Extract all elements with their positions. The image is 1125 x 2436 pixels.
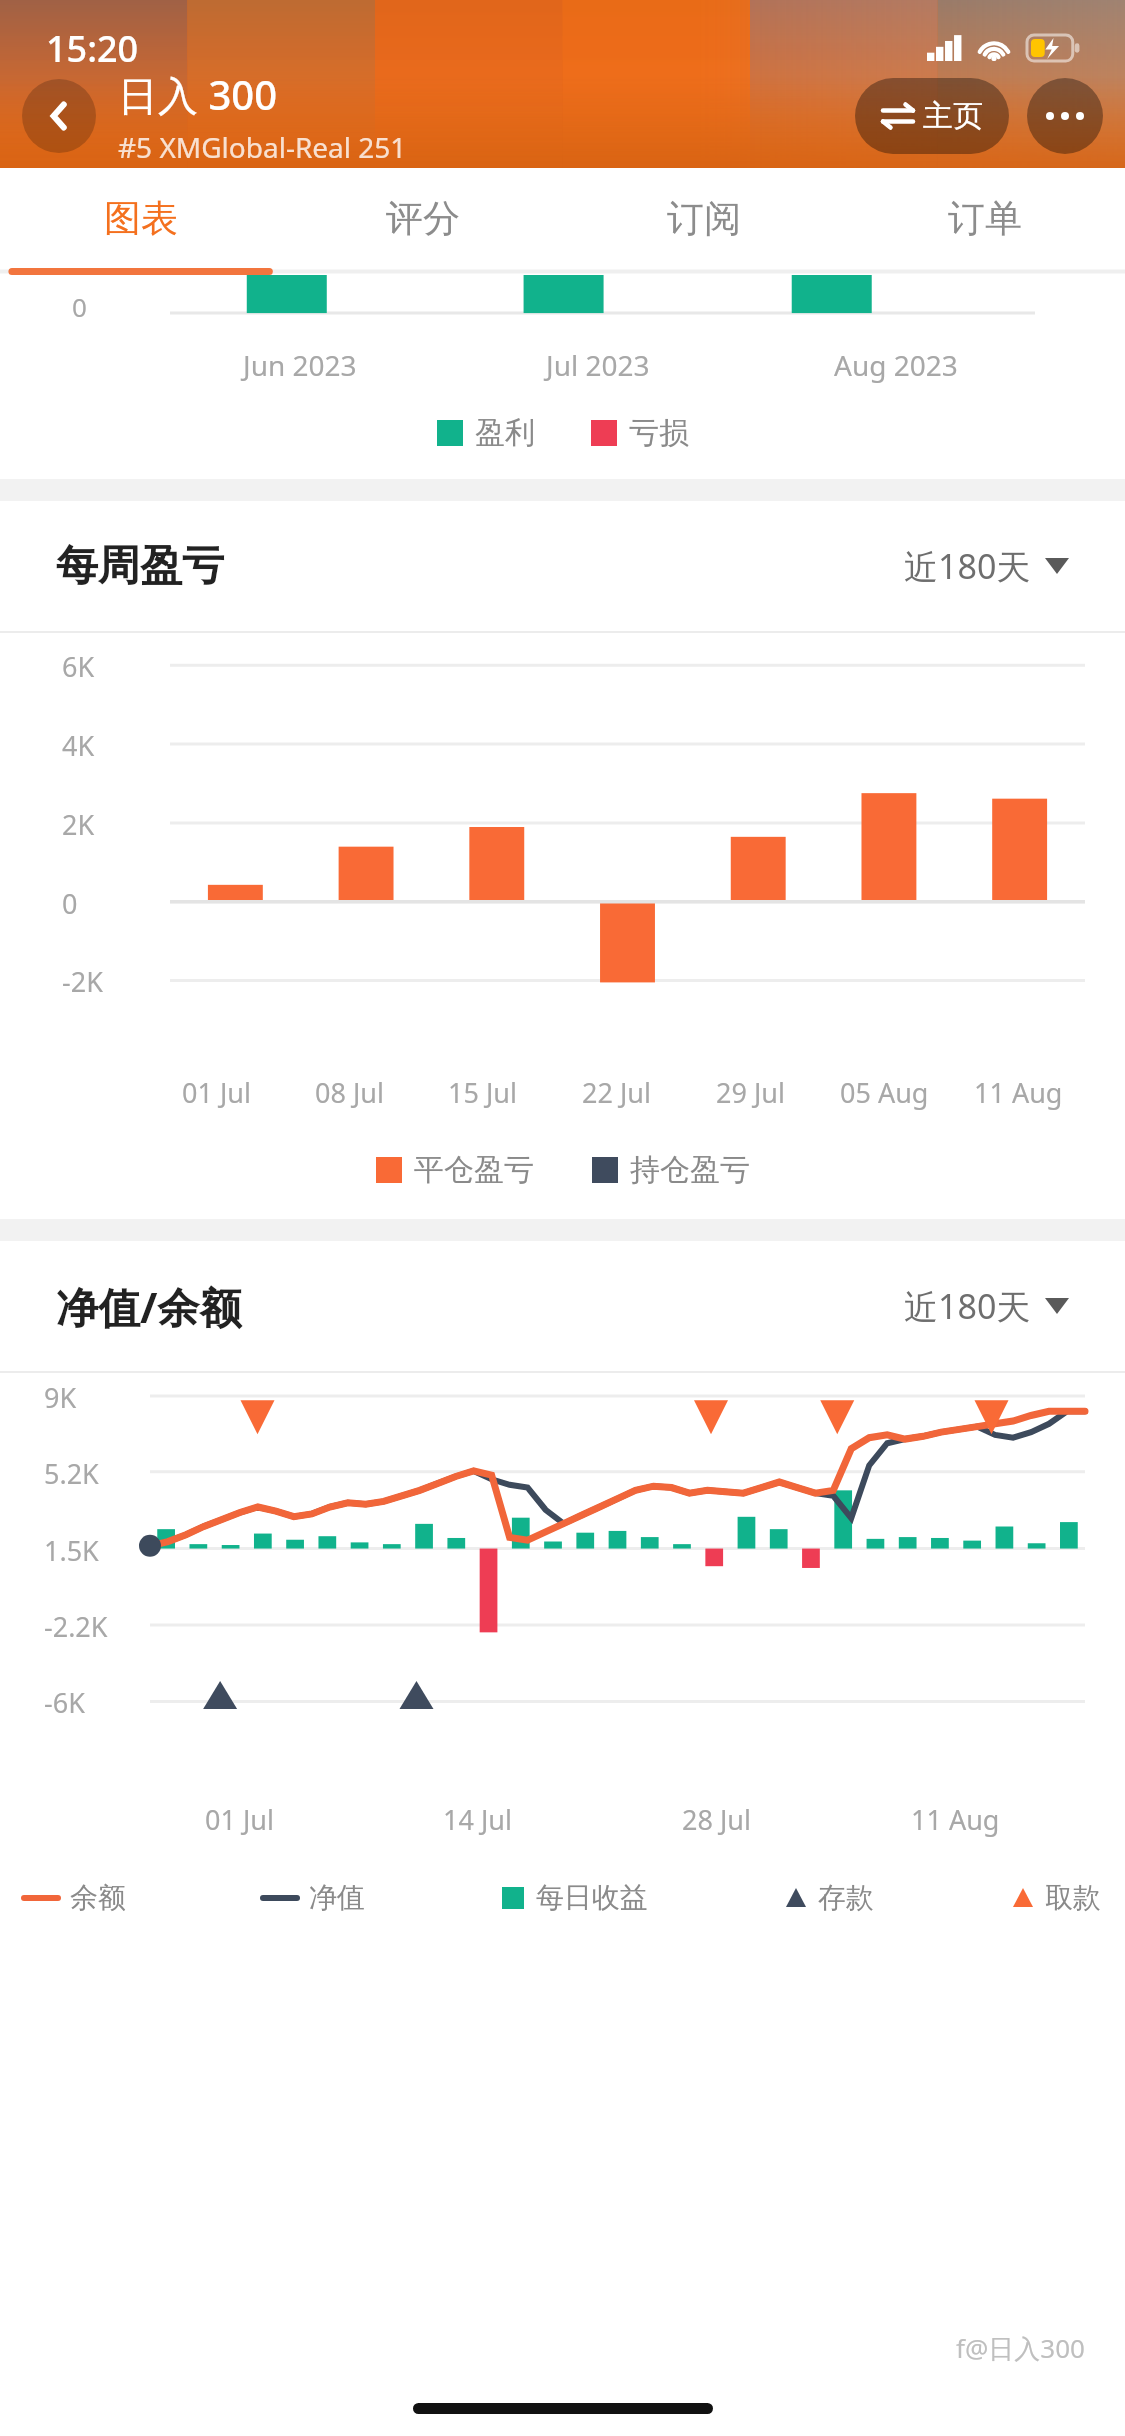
staticText: 5.2K <box>44 1455 99 1492</box>
staticText: 01 Jul <box>182 1074 251 1111</box>
staticText: 亏损 <box>629 414 689 452</box>
staticText: 6K <box>62 648 95 685</box>
staticText: 持仓盈亏 <box>630 1151 750 1189</box>
staticText: 订单 <box>948 195 1022 242</box>
staticText: 0 <box>62 885 78 922</box>
staticText: 22 Jul <box>582 1074 651 1111</box>
staticText: 08 Jul <box>315 1074 384 1111</box>
staticText: 订阅 <box>667 195 741 242</box>
staticText: 取款 <box>1045 1880 1101 1915</box>
staticText: Jul 2023 <box>546 346 650 384</box>
staticText: #5 XMGlobal-Real 251 <box>118 128 407 166</box>
staticText: 近180天 <box>904 543 1031 589</box>
staticText: 4K <box>62 727 95 764</box>
staticText: -6K <box>44 1684 85 1721</box>
staticText: -2K <box>62 963 103 1000</box>
button[interactable]: 订阅 <box>563 168 844 268</box>
staticText: 01 Jul <box>205 1801 274 1838</box>
button[interactable]: 图表 <box>0 168 282 268</box>
staticText: 余额 <box>70 1880 126 1915</box>
staticText: 净值/余额 <box>56 1278 242 1335</box>
staticText: 图表 <box>104 195 178 242</box>
staticText: 28 Jul <box>682 1801 751 1838</box>
staticText: 近180天 <box>904 1283 1031 1329</box>
button[interactable]: 订单 <box>844 168 1125 268</box>
button[interactable]: 近180天 <box>904 1283 1069 1329</box>
button[interactable]: 评分 <box>282 168 563 268</box>
staticText: 日入 300 <box>118 67 278 122</box>
staticText: 净值 <box>309 1880 365 1915</box>
staticText: 29 Jul <box>716 1074 785 1111</box>
staticText: Jun 2023 <box>243 346 357 384</box>
staticText: 15:20 <box>46 24 139 73</box>
staticText: f@日入300 <box>956 2330 1085 2366</box>
staticText: 9K <box>44 1379 77 1416</box>
staticText: Aug 2023 <box>834 346 958 384</box>
staticText: 存款 <box>818 1880 874 1915</box>
staticText: 15 Jul <box>448 1074 517 1111</box>
staticText: -2.2K <box>44 1608 108 1645</box>
staticText: 0 <box>72 289 87 324</box>
staticText: 每日收益 <box>536 1880 648 1915</box>
staticText: 平仓盈亏 <box>414 1151 534 1189</box>
staticText: 盈利 <box>475 414 535 452</box>
staticText: 05 Aug <box>840 1074 929 1111</box>
staticText: 1.5K <box>44 1532 99 1569</box>
button[interactable]: Back <box>22 79 96 153</box>
staticText: 主页 <box>923 97 983 135</box>
staticText: 11 Aug <box>911 1801 1000 1838</box>
button[interactable]: 近180天 <box>904 543 1069 589</box>
staticText: 每周盈亏 <box>56 540 224 593</box>
staticText: 14 Jul <box>443 1801 512 1838</box>
staticText: 2K <box>62 806 95 843</box>
staticText: 11 Aug <box>974 1074 1063 1111</box>
button[interactable]: More options <box>1027 78 1103 154</box>
button[interactable]: 主页 <box>855 78 1009 154</box>
staticText: 评分 <box>386 195 460 242</box>
